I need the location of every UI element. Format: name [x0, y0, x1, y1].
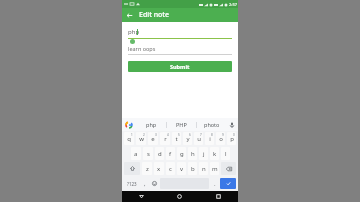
button[interactable]: v	[177, 162, 186, 175]
button[interactable]: i	[205, 132, 214, 145]
button[interactable]: Voice input	[226, 118, 238, 131]
staticText: g	[180, 150, 184, 158]
staticText: u	[197, 135, 201, 143]
button[interactable]: d	[155, 147, 164, 160]
staticText: b	[191, 165, 195, 173]
staticText: j	[203, 150, 205, 158]
button[interactable]: m	[210, 162, 219, 175]
staticText: learn oops	[128, 45, 156, 52]
staticText: l	[225, 150, 227, 158]
staticText: 5	[178, 133, 180, 137]
staticText: 3	[155, 133, 157, 137]
button[interactable]: x	[154, 162, 164, 175]
staticText: s	[147, 150, 150, 158]
staticText: 4	[167, 133, 169, 137]
staticText: n	[202, 165, 206, 173]
staticText: 2:57	[229, 2, 237, 7]
staticText: f	[169, 150, 172, 158]
staticText: y	[186, 135, 190, 143]
button[interactable]: e	[148, 132, 158, 145]
button[interactable]: w	[136, 132, 146, 145]
button[interactable]: o	[216, 132, 225, 145]
button[interactable]: ,	[141, 178, 149, 189]
button[interactable]: photo	[197, 118, 226, 131]
staticText: ,	[144, 180, 146, 188]
button[interactable]: Recents	[199, 191, 238, 202]
staticText: t	[175, 135, 178, 143]
button[interactable]: Shift	[124, 162, 140, 175]
button[interactable]: Submit	[128, 61, 232, 72]
staticText: h	[191, 150, 195, 158]
button[interactable]: ?123	[124, 178, 139, 189]
button[interactable]: l	[221, 147, 230, 160]
button[interactable]: g	[177, 147, 186, 160]
staticText: 0	[233, 133, 235, 137]
button[interactable]: s	[143, 147, 153, 160]
button[interactable]: PHP	[167, 118, 196, 131]
staticText: 7	[200, 133, 202, 137]
button[interactable]: a	[131, 147, 141, 160]
button[interactable]: Google search	[122, 118, 136, 131]
button[interactable]: k	[210, 147, 219, 160]
button[interactable]: c	[166, 162, 175, 175]
button[interactable]: php	[128, 28, 232, 39]
button[interactable]: n	[199, 162, 208, 175]
staticText: q	[127, 135, 131, 143]
staticText: o	[219, 135, 223, 143]
staticText: 6	[189, 133, 191, 137]
button[interactable]: p	[227, 132, 236, 145]
staticText: w	[139, 135, 144, 143]
button[interactable]: Back	[122, 8, 136, 22]
button[interactable]: Backspace	[221, 162, 236, 175]
staticText: c	[169, 165, 172, 173]
staticText: .	[214, 180, 216, 188]
staticText: ?123	[127, 181, 137, 187]
button[interactable]: y	[183, 132, 192, 145]
staticText: x	[157, 165, 161, 173]
button[interactable]: .	[211, 178, 218, 189]
staticText: PHP	[176, 121, 187, 128]
staticText: k	[213, 150, 217, 158]
button[interactable]: h	[188, 147, 197, 160]
staticText: Submit	[170, 63, 190, 70]
button[interactable]: Enter	[220, 178, 236, 189]
staticText: a	[134, 150, 138, 158]
staticText: php	[146, 121, 157, 128]
staticText: 8	[211, 133, 213, 137]
staticText: z	[146, 165, 149, 173]
staticText: d	[158, 150, 162, 158]
staticText: 9	[222, 133, 224, 137]
staticText: r	[164, 135, 167, 143]
button[interactable]: php	[136, 118, 166, 131]
button[interactable]: Home	[160, 191, 199, 202]
button[interactable]: f	[166, 147, 175, 160]
button[interactable]: learn oops	[128, 45, 232, 55]
staticText: v	[180, 165, 184, 173]
button[interactable]: r	[160, 132, 170, 145]
staticText: i	[209, 135, 211, 143]
button[interactable]: u	[194, 132, 203, 145]
staticText: Edit note	[139, 10, 169, 20]
button[interactable]: b	[188, 162, 197, 175]
button[interactable]: t	[172, 132, 181, 145]
button[interactable]: Emoji	[151, 178, 158, 189]
button[interactable]: j	[199, 147, 208, 160]
staticText: 2	[143, 133, 145, 137]
staticText: p	[230, 135, 234, 143]
staticText: m	[212, 165, 218, 173]
staticText: photo	[204, 121, 220, 128]
button[interactable]: Back	[122, 191, 160, 202]
button[interactable]: q	[124, 132, 134, 145]
button[interactable]: z	[142, 162, 152, 175]
staticText: 1	[131, 133, 133, 137]
staticText: e	[151, 135, 155, 143]
staticText: php	[128, 28, 140, 36]
